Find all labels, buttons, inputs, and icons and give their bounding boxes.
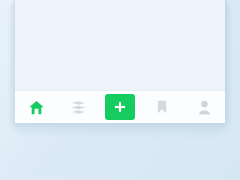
button[interactable]: Bookmarks	[141, 91, 183, 123]
button[interactable]: Layers	[57, 91, 99, 123]
button[interactable]: Home	[15, 91, 57, 123]
button[interactable]: Profile	[183, 91, 225, 123]
button[interactable]: Add	[105, 94, 135, 120]
